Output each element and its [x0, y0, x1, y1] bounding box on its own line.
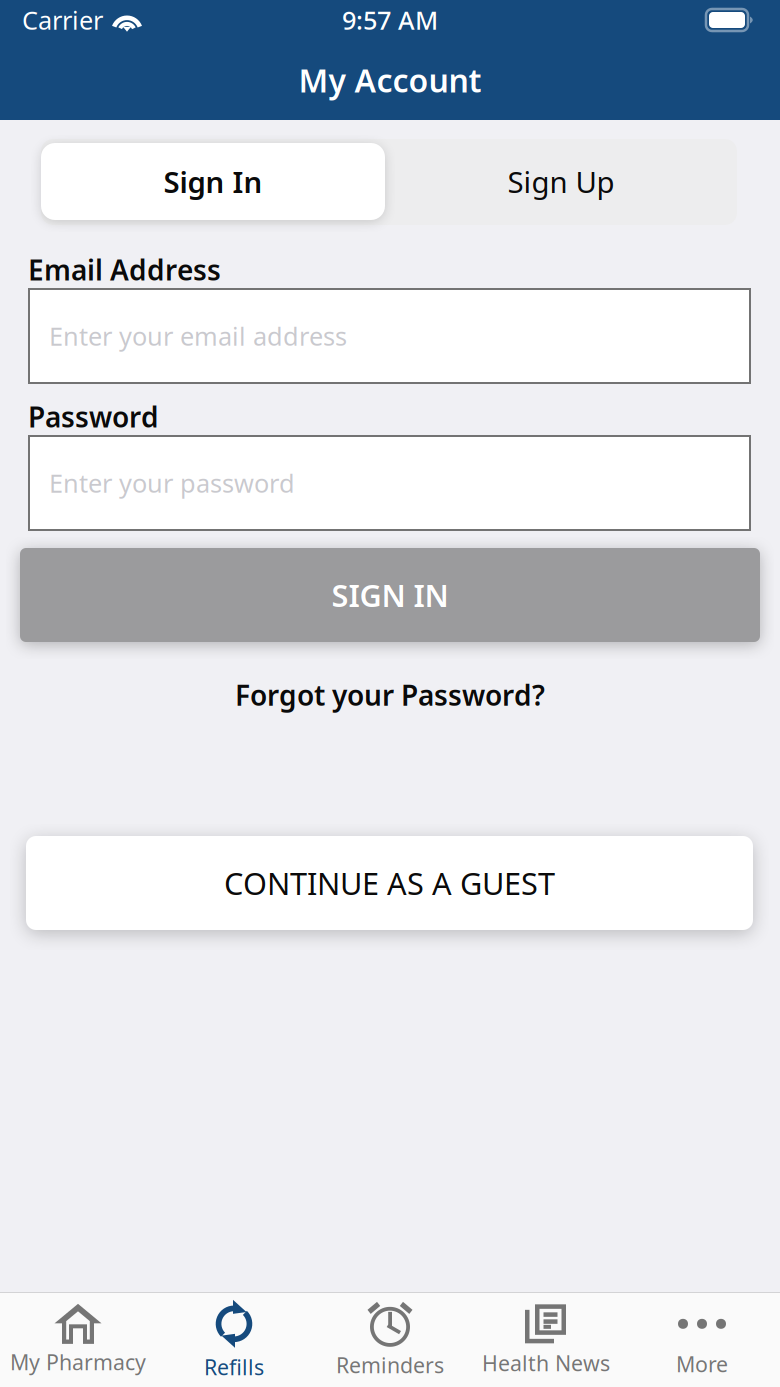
- staticText: More: [676, 1350, 728, 1378]
- button[interactable]: More: [624, 1293, 780, 1387]
- button[interactable]: Health News: [468, 1293, 624, 1387]
- staticText: Carrier: [22, 3, 103, 37]
- button[interactable]: Enter your password: [29, 436, 750, 530]
- staticText: 9:57 AM: [342, 3, 438, 37]
- staticText: Password: [28, 398, 159, 435]
- button[interactable]: Refills: [156, 1293, 312, 1387]
- staticText: My Account: [298, 59, 481, 101]
- staticText: My Pharmacy: [10, 1348, 146, 1376]
- staticText: Enter your password: [49, 466, 295, 500]
- button[interactable]: Reminders: [312, 1293, 468, 1387]
- button[interactable]: SIGN IN: [20, 548, 760, 642]
- button[interactable]: Sign In: [41, 143, 385, 220]
- staticText: SIGN IN: [331, 575, 448, 615]
- button[interactable]: My Pharmacy: [0, 1293, 156, 1387]
- button[interactable]: Sign Up: [385, 143, 737, 220]
- button[interactable]: CONTINUE AS A GUEST: [26, 836, 753, 930]
- staticText: Reminders: [336, 1351, 444, 1379]
- staticText: CONTINUE AS A GUEST: [224, 863, 555, 903]
- staticText: Refills: [204, 1353, 264, 1381]
- staticText: Enter your email address: [49, 319, 347, 353]
- staticText: Email Address: [28, 251, 221, 288]
- staticText: Health News: [482, 1349, 610, 1377]
- staticText: Sign Up: [507, 162, 614, 201]
- staticText: Sign In: [163, 162, 262, 201]
- button[interactable]: Forgot your Password?: [0, 672, 780, 718]
- button[interactable]: Enter your email address: [29, 289, 750, 383]
- staticText: Forgot your Password?: [235, 676, 545, 714]
